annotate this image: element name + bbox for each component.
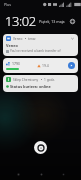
staticText: Piątek, 13 maja bbox=[39, 19, 65, 24]
staticText: Veneo bbox=[6, 43, 18, 48]
button[interactable]: Recents bbox=[59, 170, 67, 178]
button[interactable]: Back bbox=[14, 170, 22, 178]
staticText: Sklep Chemiczny bbox=[13, 78, 39, 82]
button[interactable]: Play bbox=[68, 62, 75, 69]
button[interactable]: Unlock bbox=[34, 141, 47, 154]
staticText: teraz bbox=[28, 37, 36, 41]
staticText: 19.4 bbox=[42, 63, 49, 68]
button[interactable]: Camera bbox=[68, 17, 76, 25]
staticText: 1793 bbox=[12, 61, 20, 66]
button[interactable]: Expand bbox=[70, 36, 75, 41]
button[interactable]: 1793 bbox=[3, 58, 78, 73]
button[interactable]: Veneo bbox=[3, 34, 78, 56]
button[interactable]: Home bbox=[37, 170, 45, 178]
staticText: Status kuriera: online bbox=[10, 84, 51, 89]
button[interactable]: Sklep Chemiczny bbox=[3, 75, 78, 92]
staticText: Plus bbox=[4, 2, 12, 7]
staticText: You've received a bank transfer of 121,1… bbox=[10, 49, 75, 53]
staticText: 1 godz. bbox=[44, 78, 55, 82]
staticText: Veneo bbox=[13, 37, 23, 41]
staticText: 13:02 bbox=[5, 12, 36, 30]
